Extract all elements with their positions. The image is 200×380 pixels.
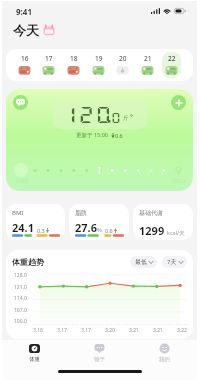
staticText: 16 bbox=[21, 54, 29, 63]
staticText: 3.21 bbox=[153, 327, 163, 334]
staticText: kcal/天 bbox=[167, 229, 185, 237]
button[interactable]: 基础代谢 bbox=[133, 204, 193, 240]
staticText: 斤 bbox=[123, 115, 129, 122]
staticText: 100.0 bbox=[172, 178, 185, 185]
staticText: 最低 bbox=[135, 258, 147, 266]
staticText: 3.17 bbox=[81, 327, 91, 334]
staticText: 27.6 bbox=[75, 220, 97, 235]
button[interactable]: 18 bbox=[64, 52, 83, 78]
staticText: 7天 bbox=[167, 258, 177, 266]
staticText: % bbox=[97, 226, 102, 234]
button[interactable]: Add weight record bbox=[171, 95, 186, 110]
button[interactable]: 20 bbox=[113, 52, 132, 78]
staticText: 3.17 bbox=[57, 327, 67, 334]
button[interactable]: 最低 bbox=[130, 256, 157, 268]
staticText: 1299 bbox=[139, 223, 165, 238]
button[interactable]: 21 bbox=[138, 52, 157, 78]
button[interactable]: 19 bbox=[89, 52, 108, 78]
staticText: 体重趋势 bbox=[12, 257, 44, 267]
staticText: 18 bbox=[70, 54, 78, 63]
staticText: 我的 bbox=[159, 356, 170, 363]
staticText: 121.0 bbox=[14, 284, 27, 291]
staticText: 114.0 bbox=[14, 295, 27, 302]
staticText: 21 bbox=[144, 54, 152, 63]
staticText: 脂肪 bbox=[75, 209, 87, 217]
staticText: 120 bbox=[60, 104, 113, 125]
button[interactable]: 脂肪 bbox=[69, 204, 129, 240]
staticText: 今天 bbox=[13, 22, 39, 38]
button[interactable]: 16 bbox=[15, 52, 34, 78]
button[interactable]: 体重 bbox=[2, 340, 67, 366]
staticText: 20 bbox=[119, 54, 127, 63]
staticText: 更新于 15:00 bbox=[76, 131, 108, 139]
staticText: 9:41 bbox=[16, 6, 32, 17]
button[interactable]: BMI bbox=[6, 204, 65, 240]
staticText: 22 bbox=[168, 54, 176, 63]
staticText: 锤子 bbox=[94, 356, 105, 363]
staticText: 17 bbox=[45, 54, 53, 63]
staticText: 128.0 bbox=[14, 272, 27, 279]
button[interactable]: 17 bbox=[39, 52, 58, 78]
staticText: 基础代谢 bbox=[139, 209, 163, 217]
staticText: 0.6 bbox=[105, 227, 113, 234]
staticText: 0 bbox=[111, 111, 121, 124]
staticText: 0.6 bbox=[115, 132, 123, 139]
staticText: 体重 bbox=[29, 356, 40, 363]
staticText: 3.20 bbox=[105, 327, 115, 334]
staticText: 3.22 bbox=[177, 327, 187, 334]
staticText: BMI bbox=[12, 209, 24, 217]
button[interactable]: Comments bbox=[13, 95, 28, 110]
button[interactable]: 7天 bbox=[162, 256, 187, 268]
button[interactable]: 锤子 bbox=[67, 340, 132, 366]
staticText: 100.0 bbox=[14, 318, 27, 325]
staticText: 120.0 bbox=[15, 178, 28, 185]
staticText: 107.0 bbox=[14, 307, 27, 314]
button[interactable]: 22 bbox=[162, 52, 181, 78]
staticText: 24.1 bbox=[12, 220, 34, 235]
staticText: 0.3 bbox=[37, 227, 45, 234]
staticText: 19 bbox=[95, 54, 103, 63]
button[interactable]: 我的 bbox=[132, 340, 197, 366]
staticText: 3.16 bbox=[33, 327, 43, 334]
staticText: 3.21 bbox=[129, 327, 139, 334]
